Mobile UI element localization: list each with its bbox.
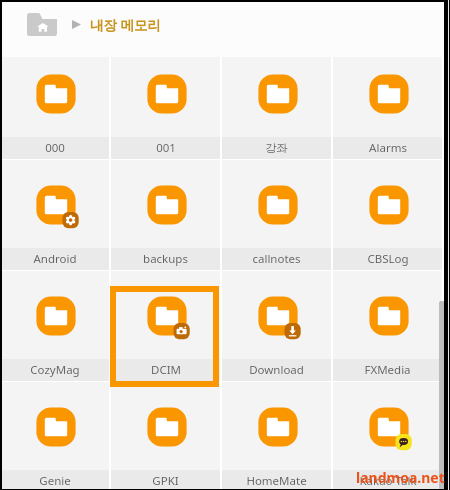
button[interactable]: 000 (0, 57, 109, 159)
staticText: Kakao Talk (359, 473, 417, 489)
button[interactable]: backups (111, 160, 220, 270)
button[interactable]: CBSLog (333, 160, 442, 270)
staticText: 내장 메모리 (90, 16, 162, 34)
button[interactable]: 001 (111, 57, 220, 159)
staticText: callnotes (252, 251, 301, 267)
staticText: DCIM (151, 362, 181, 378)
button[interactable]: CozyMag (0, 271, 109, 381)
button[interactable]: 강좌 (222, 57, 331, 159)
staticText: Alarms (369, 140, 407, 156)
staticText: Download (249, 362, 304, 378)
button[interactable]: DCIM (111, 271, 220, 381)
button[interactable]: 내장 메모리 (90, 16, 162, 34)
staticText: Android (33, 251, 77, 267)
button[interactable]: Android (0, 160, 109, 270)
button[interactable]: FXMedia (333, 271, 442, 381)
staticText: Genie (39, 473, 71, 489)
button[interactable]: HomeMate (222, 382, 331, 490)
staticText: FXMedia (364, 362, 411, 378)
staticText: GPKI (152, 473, 179, 489)
staticText: landmoa.net (356, 468, 445, 487)
button[interactable]: Genie (0, 382, 109, 490)
staticText: HomeMate (246, 473, 307, 489)
button[interactable]: DCIM selected (110, 286, 219, 387)
staticText: 000 (45, 140, 65, 156)
staticText: 강좌 (265, 141, 288, 155)
button[interactable]: Kakao Talk (333, 382, 442, 490)
button[interactable]: Home folder (27, 13, 57, 36)
staticText: 001 (156, 140, 176, 156)
staticText: CBSLog (367, 251, 409, 267)
staticText: CozyMag (30, 362, 80, 378)
staticText: backups (143, 251, 188, 267)
button[interactable]: Alarms (333, 57, 442, 159)
button[interactable]: callnotes (222, 160, 331, 270)
button[interactable]: GPKI (111, 382, 220, 490)
button[interactable]: Download (222, 271, 331, 381)
